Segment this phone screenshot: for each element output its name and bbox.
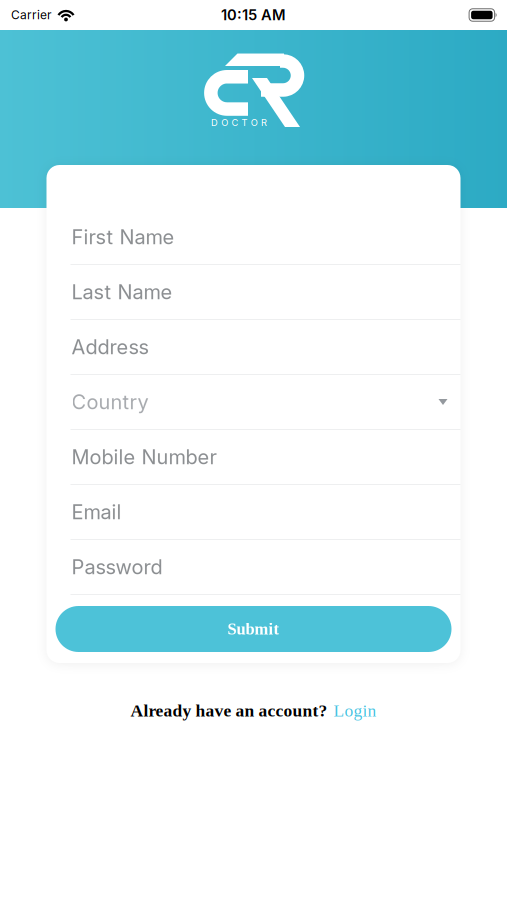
staticText: Country [71, 390, 148, 414]
button[interactable]: Last Name [46, 265, 460, 320]
staticText: Carrier [11, 8, 52, 22]
staticText: Mobile Number [71, 445, 216, 469]
button[interactable]: Country [46, 375, 460, 430]
staticText: R [261, 117, 267, 128]
staticText: Address [71, 335, 148, 359]
staticText: C [231, 117, 238, 128]
staticText: Already have an account? [130, 701, 327, 720]
staticText: Submit [227, 620, 279, 638]
button[interactable]: First Name [46, 210, 460, 265]
staticText: Email [71, 500, 121, 524]
button[interactable]: Address [46, 320, 460, 375]
button[interactable]: Submit [55, 606, 451, 652]
staticText: Last Name [71, 280, 172, 304]
button[interactable]: Mobile Number [46, 430, 460, 485]
staticText: Login [333, 701, 376, 720]
staticText: 10:15 AM [221, 6, 286, 24]
staticText: O [221, 117, 228, 128]
button[interactable]: Email [46, 485, 460, 540]
staticText: T [242, 117, 248, 128]
staticText: Password [71, 555, 162, 579]
staticText: D [211, 117, 218, 128]
staticText: First Name [71, 225, 174, 249]
button[interactable]: Login [333, 701, 376, 720]
staticText: O [251, 117, 258, 128]
button[interactable]: Password [46, 540, 460, 595]
